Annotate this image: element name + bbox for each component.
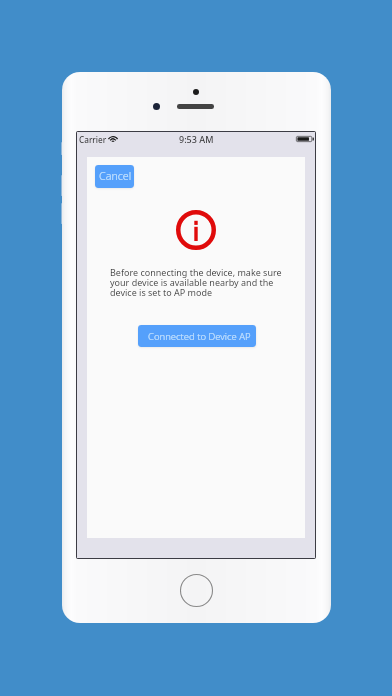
staticText: 9:53 AM xyxy=(179,133,214,145)
other: Information xyxy=(176,210,216,250)
button[interactable]: Cancel xyxy=(95,165,134,188)
staticText: Carrier xyxy=(79,134,107,145)
staticText: Cancel xyxy=(99,169,132,184)
button[interactable]: Connected to Device AP xyxy=(138,325,256,347)
staticText: Before connecting the device, make sure … xyxy=(110,266,288,299)
staticText: Connected to Device AP xyxy=(148,330,251,343)
